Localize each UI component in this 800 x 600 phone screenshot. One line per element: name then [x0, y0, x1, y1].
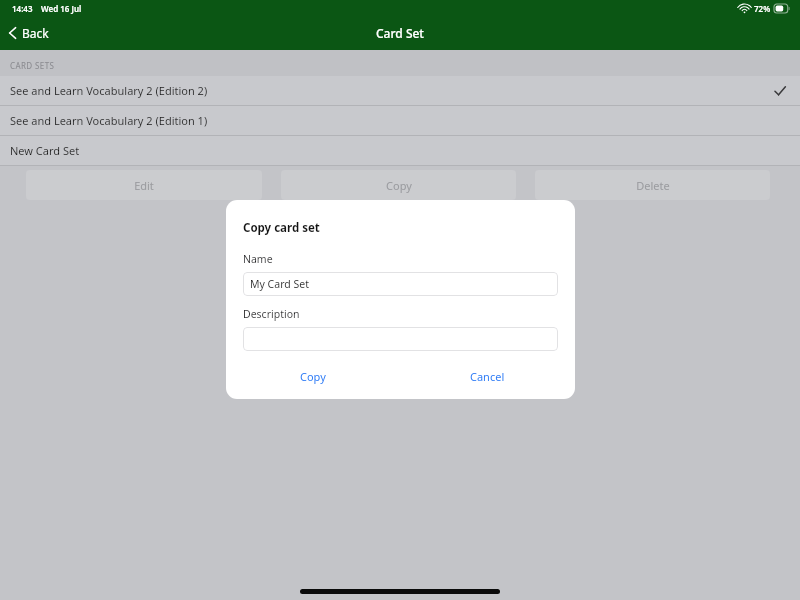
staticText: CARD SETS [10, 60, 55, 71]
staticText: 14:43 [12, 3, 33, 14]
staticText: My Card Set [250, 277, 309, 291]
button[interactable] [243, 327, 558, 351]
staticText: Back [22, 25, 49, 41]
staticText: Copy card set [243, 220, 320, 236]
staticText: Name [243, 252, 273, 266]
staticText: Copy [386, 178, 412, 193]
button[interactable]: New Card Set [0, 136, 800, 165]
button[interactable]: Back [0, 19, 59, 47]
staticText: Description [243, 307, 300, 321]
staticText: Wed 16 Jul [41, 3, 82, 14]
button[interactable]: See and Learn Vocabulary 2 (Edition 2) [0, 76, 800, 105]
staticText: Delete [636, 178, 670, 193]
button[interactable]: See and Learn Vocabulary 2 (Edition 1) [0, 106, 800, 135]
staticText: See and Learn Vocabulary 2 (Edition 1) [10, 113, 208, 128]
button[interactable]: My Card Set [243, 272, 558, 296]
staticText: See and Learn Vocabulary 2 (Edition 2) [10, 83, 208, 98]
staticText: Card Set [376, 25, 424, 41]
button[interactable]: Copy [281, 170, 516, 200]
staticText: Copy [300, 369, 326, 384]
staticText: Cancel [470, 369, 505, 384]
button[interactable]: Copy [226, 363, 400, 389]
button[interactable]: Edit [26, 170, 262, 200]
button[interactable]: Delete [535, 170, 770, 200]
button[interactable]: Cancel [400, 363, 575, 389]
staticText: Edit [134, 178, 154, 193]
staticText: New Card Set [10, 143, 80, 158]
staticText: 72% [754, 3, 771, 14]
